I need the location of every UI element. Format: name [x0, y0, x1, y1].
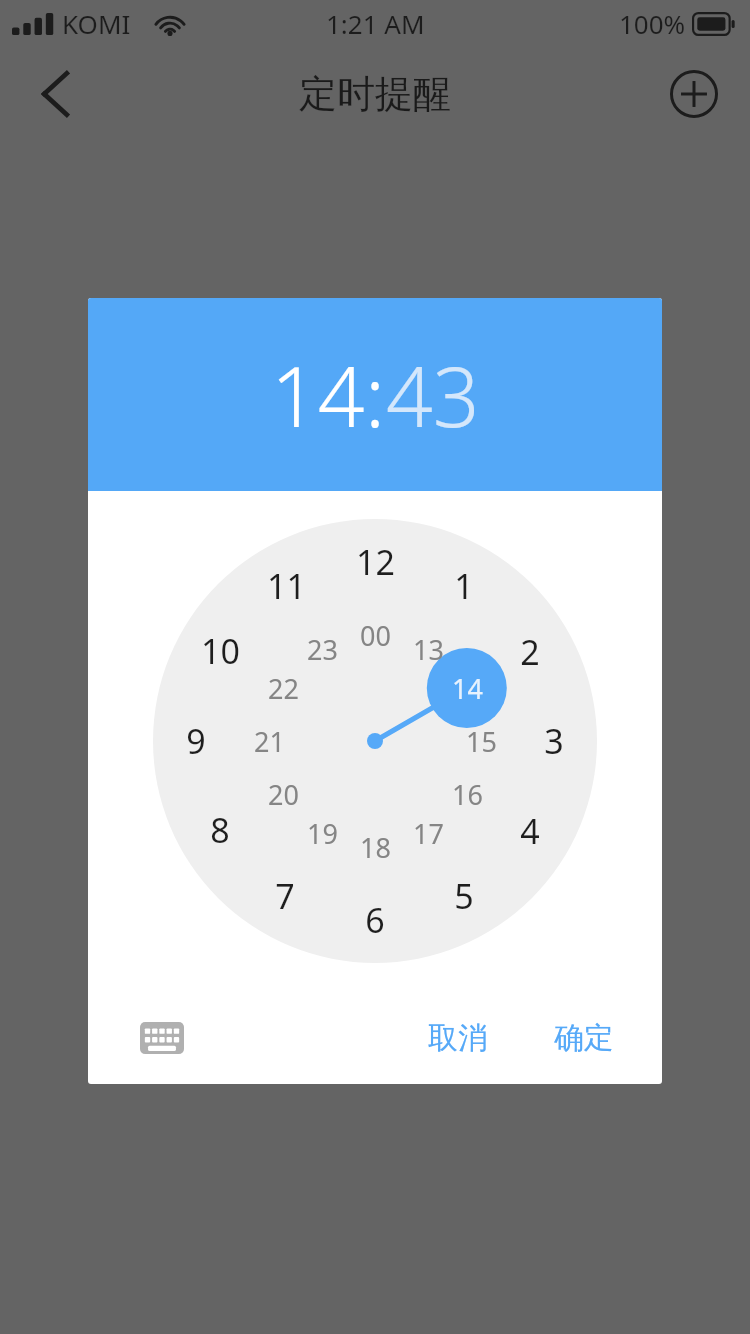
button[interactable]: 8: [193, 803, 247, 857]
staticText: 4: [520, 808, 540, 854]
button[interactable]: 00: [348, 608, 402, 662]
button[interactable]: 21: [242, 714, 296, 768]
button[interactable]: 19: [295, 806, 349, 860]
staticText: 23: [307, 631, 338, 668]
button[interactable]: 5: [437, 869, 491, 923]
staticText: 定时提醒: [299, 70, 451, 118]
button[interactable]: 7: [258, 869, 312, 923]
staticText: 3: [544, 718, 564, 764]
button[interactable]: Switch to keyboard input: [132, 1008, 192, 1068]
button[interactable]: 18: [348, 820, 402, 874]
staticText: 12: [356, 539, 395, 585]
staticText: 17: [413, 815, 444, 852]
staticText: 1: [454, 563, 474, 609]
staticText: 18: [360, 829, 391, 866]
staticText: 14: [452, 670, 483, 707]
button[interactable]: 23: [295, 622, 349, 676]
button[interactable]: 4: [503, 804, 557, 858]
button[interactable]: 15: [454, 714, 508, 768]
button[interactable]: 14: [440, 661, 494, 715]
staticText: 8: [210, 807, 230, 853]
button[interactable]: 6: [348, 893, 402, 947]
button[interactable]: 14: [271, 339, 365, 451]
button[interactable]: 10: [193, 624, 247, 678]
button[interactable]: 9: [169, 714, 223, 768]
staticText: 10: [201, 628, 240, 674]
button[interactable]: 22: [256, 661, 310, 715]
staticText: 5: [454, 873, 474, 919]
staticText: 取消: [428, 1019, 488, 1057]
button[interactable]: 11: [259, 559, 313, 613]
staticText: 6: [365, 897, 385, 943]
button[interactable]: 2: [503, 625, 557, 679]
button[interactable]: Add reminder: [658, 58, 730, 130]
staticText: 7: [275, 873, 295, 919]
staticText: 16: [452, 776, 483, 813]
staticText: 15: [466, 723, 497, 760]
staticText: KOMI: [62, 6, 131, 41]
button[interactable]: 1: [437, 559, 491, 613]
staticText: 100%: [619, 6, 686, 41]
staticText: 2: [520, 629, 540, 675]
button[interactable]: 取消: [410, 1009, 506, 1067]
staticText: 13: [413, 631, 444, 668]
button[interactable]: 17: [401, 806, 455, 860]
staticText: :: [365, 339, 386, 451]
button[interactable]: Back: [18, 56, 94, 132]
button[interactable]: 3: [527, 714, 581, 768]
staticText: 22: [268, 670, 299, 707]
staticText: 21: [254, 723, 285, 760]
button[interactable]: 13: [401, 622, 455, 676]
button[interactable]: 43: [386, 339, 480, 451]
button[interactable]: 确定: [536, 1009, 632, 1067]
button[interactable]: 12: [348, 535, 402, 589]
staticText: 19: [307, 815, 338, 852]
staticText: 20: [268, 776, 299, 813]
button[interactable]: 16: [440, 767, 494, 821]
staticText: 9: [186, 718, 206, 764]
staticText: 11: [267, 563, 306, 609]
staticText: 确定: [554, 1019, 614, 1057]
staticText: 1:21 AM: [326, 6, 425, 41]
staticText: 00: [360, 617, 391, 654]
button[interactable]: 20: [256, 767, 310, 821]
